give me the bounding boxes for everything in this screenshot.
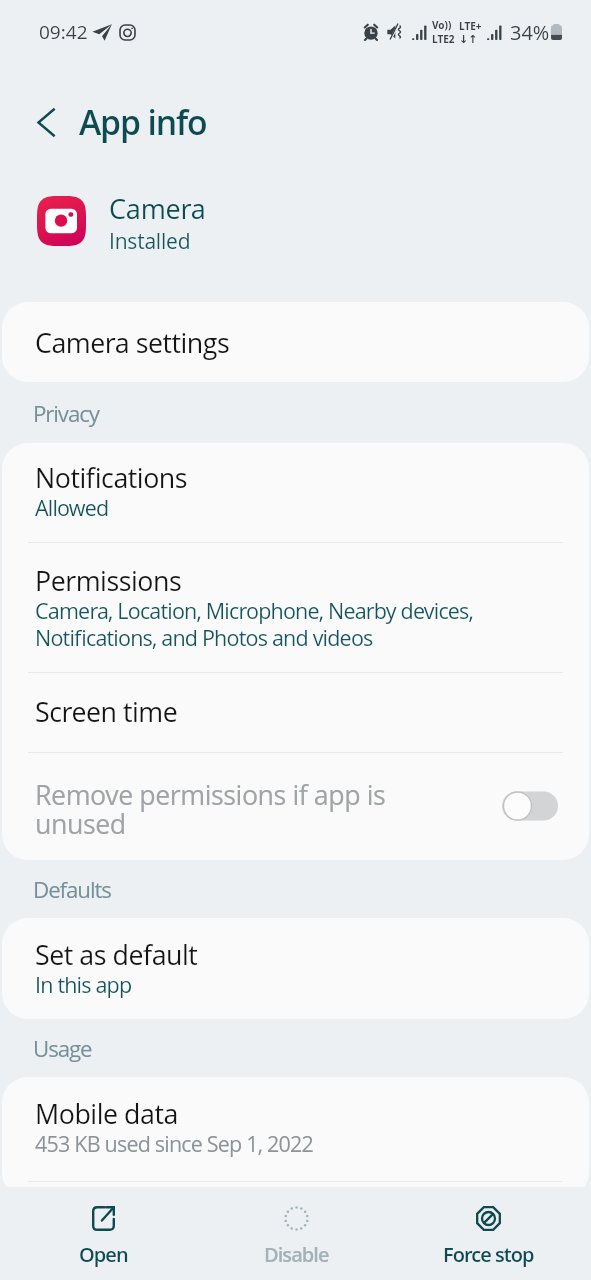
button[interactable]: Camera settings — [2, 302, 589, 382]
staticText: Disable — [264, 1241, 329, 1268]
button[interactable]: Notifications — [2, 443, 589, 542]
staticText: Remove permissions if app is unused — [35, 776, 502, 842]
staticText: ↓↑ — [459, 33, 478, 46]
button[interactable]: Back — [24, 93, 68, 137]
staticText: Camera, Location, Microphone, Nearby dev… — [35, 596, 474, 652]
button[interactable]: Screen time — [2, 673, 589, 752]
staticText: Screen time — [35, 693, 178, 729]
staticText: Installed — [109, 227, 191, 256]
button[interactable]: Permissions — [2, 543, 589, 672]
staticText: Allowed — [35, 493, 109, 522]
staticText: 09:42 — [39, 19, 88, 45]
staticText: 34% — [510, 19, 550, 46]
button[interactable]: Force stop — [392, 1190, 584, 1280]
staticText: Usage — [33, 1033, 92, 1063]
staticText: Permissions — [35, 562, 182, 598]
staticText: Camera settings — [35, 324, 230, 360]
staticText: Notifications — [35, 459, 188, 495]
staticText: Open — [79, 1241, 128, 1268]
staticText: App info — [79, 99, 207, 145]
button[interactable]: Mobile data — [2, 1077, 589, 1181]
staticText: Privacy — [33, 398, 99, 428]
staticText: Camera — [109, 190, 206, 227]
staticText: LTE2 — [432, 32, 455, 46]
staticText: Vo)) — [432, 18, 452, 32]
button[interactable]: Disable — [200, 1190, 392, 1280]
staticText: Set as default — [35, 936, 198, 972]
staticText: Defaults — [33, 874, 111, 904]
staticText: In this app — [35, 970, 132, 999]
button[interactable]: Open — [7, 1190, 200, 1280]
staticText: Force stop — [443, 1241, 534, 1268]
staticText: 453 KB used since Sep 1, 2022 — [35, 1129, 313, 1158]
button[interactable]: Remove permissions if app is unused — [2, 753, 589, 860]
staticText: LTE+ — [459, 19, 482, 33]
button[interactable]: Set as default — [2, 918, 589, 1019]
staticText: Mobile data — [35, 1095, 178, 1131]
